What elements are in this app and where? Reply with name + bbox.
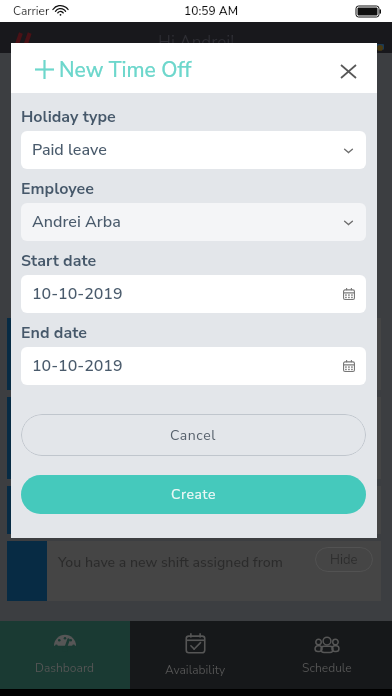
button[interactable]: New Time Off (35, 54, 192, 83)
staticText: New Time Off (59, 56, 192, 85)
button[interactable]: Andrei Arba (21, 203, 366, 241)
staticText: 10-10-2019 (32, 355, 123, 377)
staticText: was registered and is pending (58, 487, 247, 506)
button[interactable]: Availability (130, 621, 261, 689)
button[interactable]: Close (333, 53, 363, 83)
button[interactable]: Cancel (21, 414, 366, 456)
staticText: 10-10-2019 (32, 283, 123, 305)
staticText: Andrei Arba (32, 211, 121, 233)
staticText: Carrier (13, 3, 50, 19)
button[interactable]: Hide (315, 547, 373, 572)
staticText: You have a new shift assigned from (58, 553, 283, 572)
staticText: approval (58, 508, 113, 527)
button[interactable]: Dashboard (0, 621, 130, 689)
staticText: Holiday type (21, 106, 116, 128)
staticText: Hi Andrei! (158, 31, 235, 54)
staticText: Schedule (302, 660, 352, 676)
staticText: Start date (21, 250, 97, 272)
staticText: Cancel (170, 426, 217, 445)
staticText: Hide (330, 551, 358, 569)
staticText: Create (171, 485, 217, 504)
staticText: Availability (165, 662, 226, 678)
button[interactable]: Create (21, 475, 366, 514)
staticText: Dashboard (35, 660, 95, 676)
button[interactable]: Schedule (261, 621, 392, 689)
staticText: 10:59 AM (184, 3, 238, 19)
button[interactable]: Paid leave (21, 131, 366, 169)
staticText: End date (21, 322, 87, 344)
button[interactable]: 10-10-2019 (21, 275, 366, 313)
staticText: Employee (21, 178, 94, 200)
staticText: Paid leave (32, 139, 107, 161)
button[interactable]: 10-10-2019 (21, 347, 366, 385)
